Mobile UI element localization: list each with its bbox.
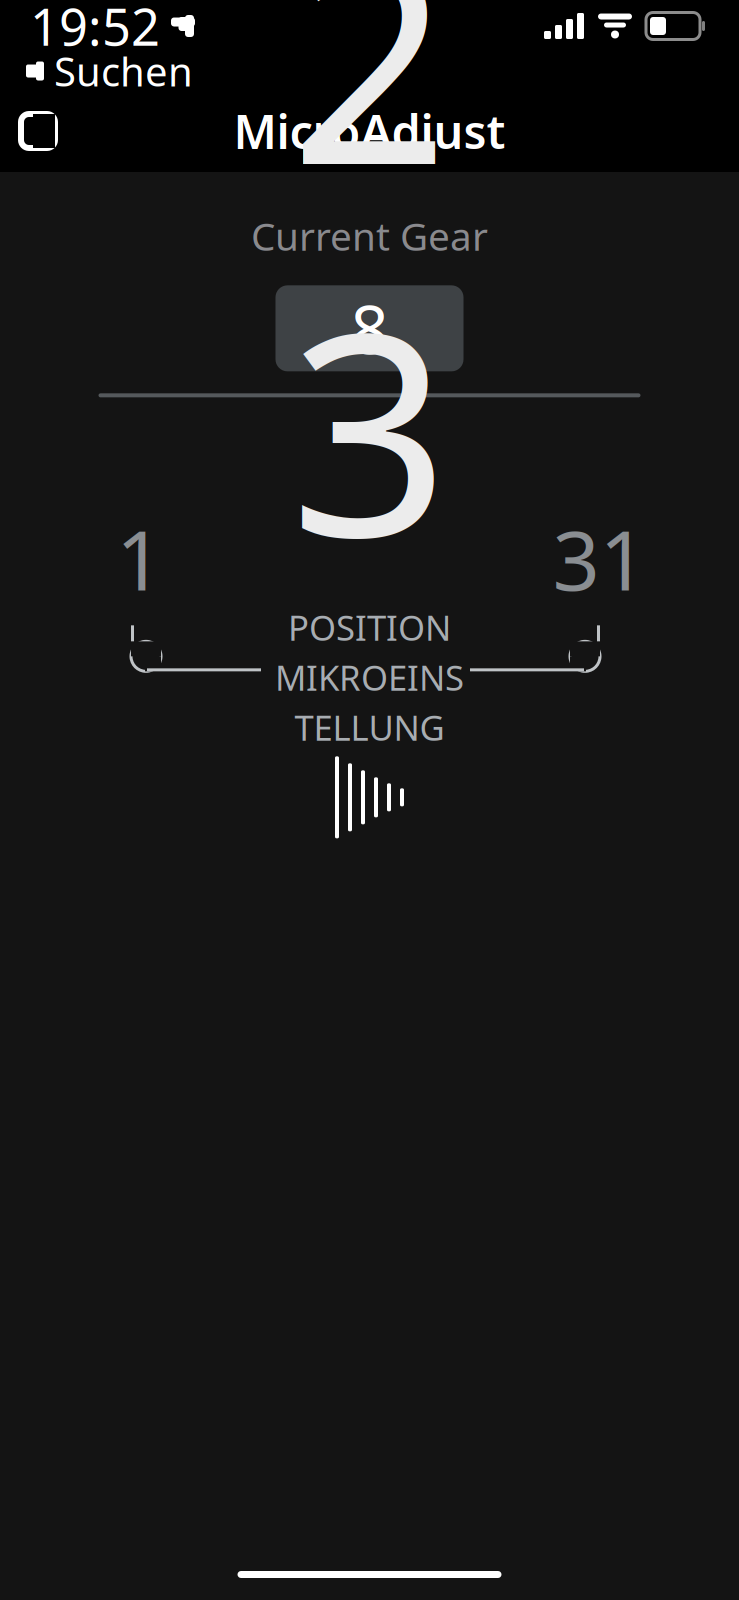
staticText: 19:52 — [30, 0, 160, 60]
staticText: MIKROEINS — [275, 654, 464, 700]
button[interactable]: Back — [0, 93, 76, 169]
staticText: POSITION — [288, 604, 451, 650]
staticText: Suchen — [54, 44, 193, 97]
staticText: Current Gear — [251, 210, 488, 261]
button[interactable]: Suchen — [0, 42, 193, 99]
staticText: MicroAdjust — [233, 100, 505, 162]
staticText: TELLUNG — [294, 704, 444, 750]
staticText: 31 — [552, 504, 646, 613]
staticText: 1 — [116, 504, 163, 613]
button[interactable]: 8 — [275, 285, 463, 371]
staticText: 8 — [350, 284, 388, 373]
staticText: 23 — [289, 0, 449, 613]
